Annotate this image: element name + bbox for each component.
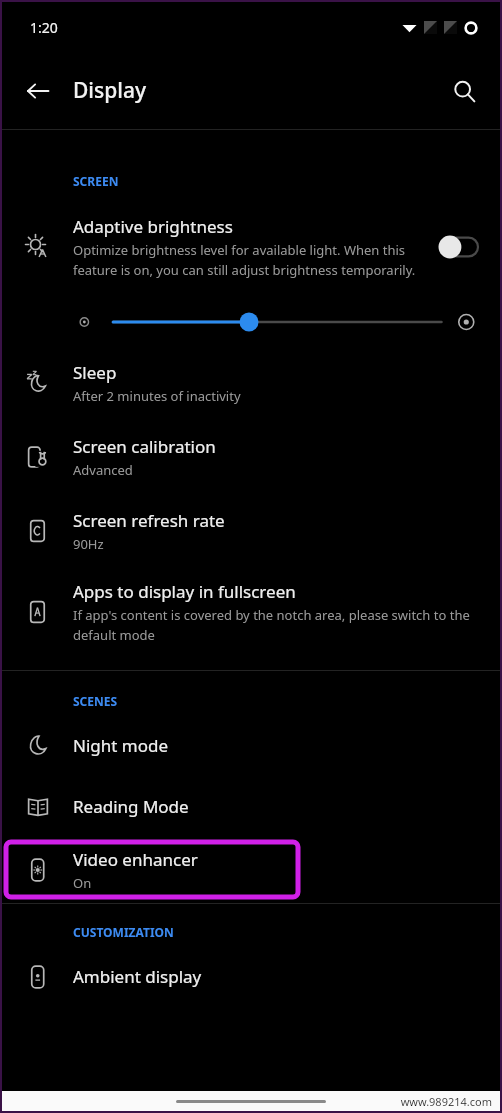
staticText: Night mode	[73, 734, 169, 757]
staticText: CUSTOMIZATION	[73, 924, 174, 940]
staticText: If app's content is covered by the notch…	[73, 606, 476, 644]
button[interactable]: Apps to display in fullscreen	[2, 568, 500, 656]
button[interactable]: Ambient display	[2, 946, 500, 1007]
staticText: Optimize brightness level for available …	[73, 241, 428, 279]
button[interactable]: Search	[442, 69, 486, 113]
staticText: Apps to display in fullscreen	[73, 580, 296, 603]
staticText: 90Hz	[73, 535, 104, 553]
staticText: Sleep	[73, 361, 117, 384]
staticText: Screen calibration	[73, 435, 216, 458]
staticText: www.989214.com	[400, 1094, 492, 1109]
button[interactable]: Screen refresh rate	[2, 494, 500, 568]
button[interactable]: Sleep	[2, 346, 500, 420]
staticText: On	[73, 874, 92, 892]
button[interactable]: Night mode	[2, 715, 500, 776]
staticText: SCENES	[73, 693, 118, 709]
staticText: SCREEN	[73, 173, 119, 189]
button[interactable]: Screen calibration	[2, 420, 500, 494]
staticText: Screen refresh rate	[73, 509, 225, 532]
staticText: Display	[73, 76, 147, 105]
button[interactable]: Back	[16, 69, 60, 113]
button[interactable]: Adaptive brightness	[2, 195, 500, 298]
staticText: Video enhancer	[73, 848, 198, 871]
button[interactable]: Reading Mode	[2, 776, 500, 837]
staticText: 1:20	[30, 18, 58, 37]
staticText: Ambient display	[73, 965, 202, 988]
staticText: Reading Mode	[73, 795, 189, 818]
staticText: After 2 minutes of inactivity	[73, 387, 241, 405]
staticText: Adaptive brightness	[73, 215, 233, 238]
staticText: Advanced	[73, 461, 133, 479]
button[interactable]: Video enhancer	[2, 837, 500, 903]
button[interactable]: Adaptive brightness toggle	[438, 234, 478, 260]
